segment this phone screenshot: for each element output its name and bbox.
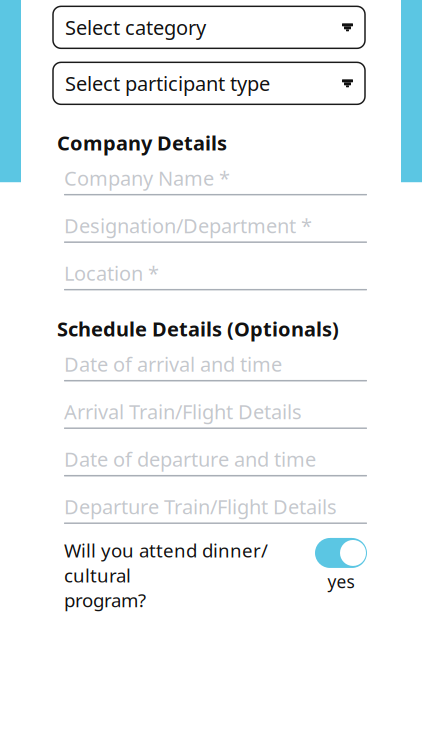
staticText: Will you attend dinner/cultural program? [64,538,268,612]
button[interactable]: Select category [53,6,365,48]
staticText: Select category [65,14,206,41]
staticText: Select participant type [65,70,270,97]
staticText: Company Details [57,129,227,156]
button[interactable]: Select participant type [53,62,365,104]
staticText: yes [327,570,354,593]
staticText: Location * [64,260,159,286]
staticText: Arrival Train/Flight Details [64,398,302,425]
button[interactable]: Attend dinner or cultural program [315,538,367,593]
staticText: Schedule Details (Optionals) [57,315,339,342]
staticText: Date of arrival and time [64,351,282,377]
staticText: Date of departure and time [64,446,316,472]
staticText: Company Name * [64,165,230,191]
staticText: Designation/Department * [64,212,312,239]
staticText: Departure Train/Flight Details [64,493,337,520]
